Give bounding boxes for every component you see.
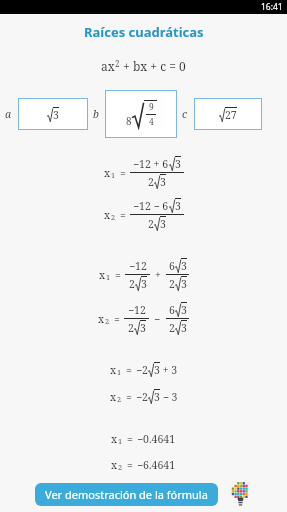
staticText: x xyxy=(104,208,111,222)
staticText: −2 xyxy=(136,390,148,404)
staticText: −2 xyxy=(136,363,148,377)
staticText: 2 xyxy=(117,394,122,404)
button[interactable]: 27 xyxy=(194,98,262,130)
staticText: 27 xyxy=(225,108,237,122)
staticText: 2 xyxy=(169,321,175,335)
staticText: = xyxy=(120,208,126,222)
staticText: −12 xyxy=(128,303,146,317)
staticText: 2 xyxy=(111,212,116,222)
staticText: −6.4641 xyxy=(137,458,176,472)
button[interactable]: Ayuda xyxy=(227,481,253,507)
staticText: ax xyxy=(101,58,115,74)
staticText: + xyxy=(155,268,161,282)
staticText: x xyxy=(110,390,117,404)
staticText: 3 xyxy=(181,259,187,273)
staticText: 2 xyxy=(148,217,154,231)
staticText: 3 xyxy=(175,157,181,171)
staticText: x xyxy=(111,458,118,472)
staticText: −0.4641 xyxy=(137,432,176,446)
staticText: 1 xyxy=(106,272,111,282)
staticText: 3 xyxy=(175,199,181,213)
staticText: −12 xyxy=(129,259,147,273)
staticText: 3 xyxy=(160,217,166,231)
staticText: 9 xyxy=(149,101,154,113)
button[interactable]: 8 xyxy=(105,90,177,138)
staticText: + 3 xyxy=(160,363,178,377)
staticText: − 3 xyxy=(160,390,178,404)
staticText: 2 xyxy=(148,175,154,189)
staticText: 4 xyxy=(149,116,154,128)
staticText: = xyxy=(114,312,120,326)
staticText: x xyxy=(98,312,105,326)
staticText: − xyxy=(154,312,161,326)
staticText: 3 xyxy=(140,321,146,335)
staticText: −12 + 6 xyxy=(133,157,169,171)
staticText: x xyxy=(104,166,111,180)
staticText: 3 xyxy=(181,277,187,291)
staticText: 2 xyxy=(169,277,175,291)
staticText: x xyxy=(111,432,118,446)
staticText: Ver demostración de la fórmula xyxy=(45,487,208,502)
staticText: 8 xyxy=(126,114,132,128)
staticText: 2 xyxy=(128,321,134,335)
staticText: = xyxy=(120,166,126,180)
staticText: x xyxy=(110,363,117,377)
staticText: Raíces cuadráticas xyxy=(84,23,204,41)
staticText: 2 xyxy=(129,277,135,291)
staticText: = xyxy=(115,268,121,282)
staticText: 1 xyxy=(111,170,116,180)
staticText: = xyxy=(127,432,133,446)
staticText: −12 − 6 xyxy=(133,199,169,213)
staticText: 2 xyxy=(115,58,120,69)
staticText: = xyxy=(127,458,133,472)
staticText: x xyxy=(99,268,106,282)
button[interactable]: 3 xyxy=(18,98,88,130)
staticText: = xyxy=(126,363,132,377)
staticText: 3 xyxy=(53,108,59,122)
staticText: a xyxy=(5,107,12,121)
staticText: c xyxy=(182,107,188,121)
staticText: 3 xyxy=(154,390,160,404)
staticText: 3 xyxy=(154,363,160,377)
staticText: 3 xyxy=(181,303,187,317)
staticText: 3 xyxy=(141,277,147,291)
staticText: 16:41 xyxy=(261,1,283,13)
staticText: 3 xyxy=(160,175,166,189)
staticText: 1 xyxy=(118,436,123,446)
button[interactable]: Ver demostración de la fórmula xyxy=(35,483,218,506)
staticText: 2 xyxy=(105,316,110,326)
staticText: + bx + c = 0 xyxy=(120,58,186,74)
staticText: 6 xyxy=(169,259,175,273)
staticText: 6 xyxy=(169,303,175,317)
staticText: 2 xyxy=(118,462,123,472)
staticText: = xyxy=(126,390,132,404)
staticText: 1 xyxy=(117,367,122,377)
staticText: 3 xyxy=(181,321,187,335)
staticText: b xyxy=(93,107,99,121)
